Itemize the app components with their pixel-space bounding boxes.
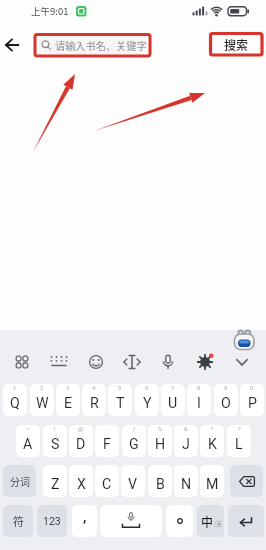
staticText: G bbox=[129, 436, 139, 453]
button[interactable]: & bbox=[174, 425, 198, 457]
staticText: K bbox=[208, 436, 217, 453]
button[interactable]: 7 bbox=[161, 384, 185, 416]
staticText: Y bbox=[143, 395, 152, 412]
button[interactable]: . bbox=[95, 425, 119, 457]
button[interactable] bbox=[230, 465, 263, 497]
staticText: % bbox=[158, 426, 163, 433]
button[interactable]: ~ bbox=[16, 425, 40, 457]
staticText: 7 bbox=[171, 385, 175, 392]
staticText: B bbox=[156, 476, 165, 493]
staticText: P bbox=[248, 395, 257, 412]
button[interactable]: M bbox=[200, 465, 224, 497]
staticText: / bbox=[133, 426, 136, 433]
button[interactable]: / bbox=[122, 425, 146, 457]
staticText: V bbox=[128, 476, 138, 493]
button[interactable]: % bbox=[148, 425, 172, 457]
button[interactable]: 分词 bbox=[3, 465, 36, 497]
staticText: 123 bbox=[43, 515, 61, 527]
button[interactable]: ? bbox=[227, 425, 251, 457]
staticText: E bbox=[64, 395, 73, 412]
staticText: 0 bbox=[250, 385, 254, 392]
staticText: @ bbox=[78, 426, 84, 433]
staticText: J bbox=[182, 436, 190, 453]
staticText: ! bbox=[54, 426, 56, 433]
staticText: . bbox=[106, 426, 108, 433]
button[interactable]: 2 bbox=[30, 384, 54, 416]
staticText: Q bbox=[10, 395, 20, 412]
staticText: 符 bbox=[13, 513, 24, 529]
button[interactable]: 搜索 bbox=[211, 34, 261, 55]
staticText: C bbox=[102, 476, 112, 493]
button[interactable]: 123 bbox=[37, 505, 67, 537]
button[interactable]: Z bbox=[43, 465, 67, 497]
staticText: 8 bbox=[197, 385, 201, 392]
button[interactable]: C bbox=[95, 465, 119, 497]
button[interactable]: 6 bbox=[135, 384, 159, 416]
staticText: , bbox=[83, 508, 87, 526]
staticText: L bbox=[235, 436, 243, 453]
staticText: I bbox=[197, 395, 201, 412]
button[interactable]: B bbox=[148, 465, 172, 497]
button[interactable]: 中 bbox=[197, 505, 224, 537]
staticText: 搜索 bbox=[224, 36, 249, 53]
staticText: Z bbox=[51, 476, 60, 493]
staticText: 请输入书名、关键字 bbox=[55, 38, 147, 53]
button[interactable]: X bbox=[69, 465, 93, 497]
staticText: M bbox=[206, 476, 219, 493]
button[interactable] bbox=[228, 505, 264, 537]
staticText: R bbox=[90, 395, 99, 412]
button[interactable] bbox=[100, 505, 162, 537]
staticText: 4 bbox=[92, 385, 96, 392]
staticText: D bbox=[76, 436, 86, 453]
button[interactable]: 9 bbox=[214, 384, 238, 416]
staticText: U bbox=[168, 395, 178, 412]
button[interactable]: , bbox=[72, 505, 97, 537]
staticText: A bbox=[23, 436, 33, 453]
button[interactable] bbox=[166, 505, 193, 537]
button[interactable]: 符 bbox=[3, 505, 33, 537]
staticText: 中 bbox=[201, 513, 214, 530]
button[interactable]: 8 bbox=[187, 384, 211, 416]
staticText: /英 bbox=[214, 520, 222, 528]
staticText: 3 bbox=[66, 385, 70, 392]
button[interactable]: * bbox=[200, 425, 224, 457]
button[interactable]: 1 bbox=[3, 384, 27, 416]
staticText: 5 bbox=[118, 385, 122, 392]
staticText: 6 bbox=[145, 385, 149, 392]
button[interactable]: 请输入书名、关键字 bbox=[37, 36, 148, 54]
button[interactable]: 3 bbox=[56, 384, 80, 416]
staticText: & bbox=[184, 426, 188, 433]
staticText: * bbox=[211, 426, 214, 433]
staticText: ? bbox=[238, 426, 241, 433]
staticText: 2 bbox=[40, 385, 44, 392]
button[interactable]: V bbox=[121, 465, 145, 497]
staticText: W bbox=[36, 395, 49, 412]
staticText: T bbox=[116, 395, 125, 412]
staticText: ~ bbox=[26, 426, 30, 433]
button[interactable] bbox=[2, 34, 24, 56]
button[interactable]: N bbox=[174, 465, 198, 497]
button[interactable]: 4 bbox=[82, 384, 106, 416]
button[interactable]: 0 bbox=[240, 384, 264, 416]
button[interactable]: 5 bbox=[108, 384, 132, 416]
button[interactable]: @ bbox=[69, 425, 93, 457]
staticText: 分词 bbox=[10, 474, 30, 488]
staticText: X bbox=[77, 476, 86, 493]
button[interactable]: ! bbox=[43, 425, 67, 457]
staticText: 1 bbox=[13, 385, 17, 392]
staticText: 9 bbox=[224, 385, 228, 392]
staticText: O bbox=[221, 395, 231, 412]
staticText: F bbox=[103, 436, 111, 453]
staticText: N bbox=[181, 476, 192, 493]
staticText: S bbox=[51, 436, 60, 453]
staticText: 上午9:01 bbox=[31, 4, 69, 18]
staticText: H bbox=[155, 436, 166, 453]
